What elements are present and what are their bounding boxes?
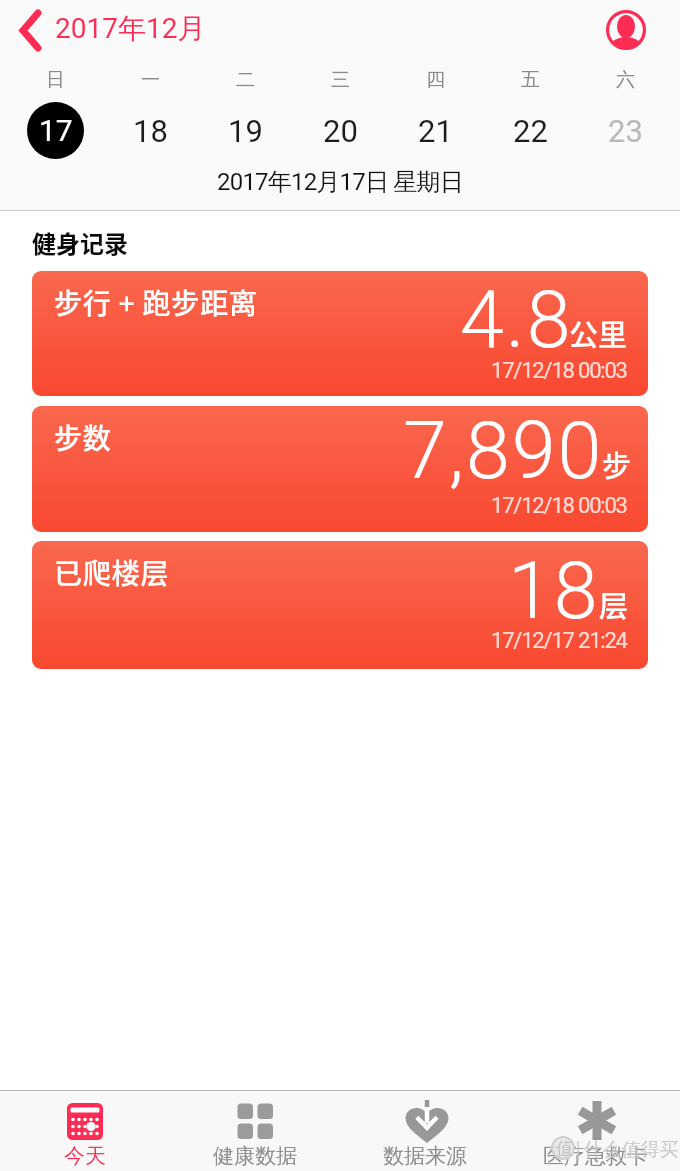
staticText: 五 bbox=[521, 68, 540, 92]
staticText: 已爬楼层 bbox=[54, 552, 170, 593]
staticText: 2017年12月17日 星期日 bbox=[217, 167, 463, 197]
button[interactable] bbox=[14, 10, 54, 50]
staticText: 数据来源 bbox=[383, 1143, 467, 1169]
staticText: 值 bbox=[556, 1138, 573, 1159]
button[interactable]: 19 bbox=[198, 102, 293, 159]
button[interactable]: 步行 + 跑步距离 bbox=[32, 271, 648, 396]
staticText: 步数 bbox=[54, 417, 112, 458]
button[interactable]: 医疗急救卡 bbox=[510, 1090, 680, 1171]
staticText: 今天 bbox=[64, 1143, 106, 1169]
staticText: 17/12/17 21:24 bbox=[491, 628, 627, 654]
staticText: 二 bbox=[236, 68, 255, 92]
button[interactable]: 今天 bbox=[0, 1090, 170, 1171]
button[interactable]: 数据来源 bbox=[340, 1090, 510, 1171]
staticText: 18 bbox=[133, 113, 168, 149]
staticText: 17 bbox=[39, 113, 73, 148]
staticText: 健身记录 bbox=[32, 225, 128, 260]
staticText: 17/12/18 00:03 bbox=[491, 493, 627, 519]
staticText: 步行 + 跑步距离 bbox=[54, 282, 258, 323]
staticText: 健康数据 bbox=[213, 1143, 297, 1169]
staticText: 六 bbox=[616, 68, 635, 92]
staticText: 17/12/18 00:03 bbox=[491, 358, 627, 384]
staticText: 21 bbox=[418, 113, 453, 149]
staticText: 19 bbox=[228, 113, 263, 149]
staticText: 三 bbox=[331, 68, 350, 92]
button[interactable]: 17 bbox=[27, 102, 84, 159]
button[interactable]: 18 bbox=[103, 102, 198, 159]
button[interactable]: 22 bbox=[483, 102, 578, 159]
staticText: 一 bbox=[141, 68, 160, 92]
staticText: 四 bbox=[426, 68, 445, 92]
button[interactable]: 步数 bbox=[32, 406, 648, 532]
button[interactable] bbox=[605, 9, 647, 51]
staticText: 公里 bbox=[569, 312, 628, 354]
staticText: 步 bbox=[602, 443, 632, 485]
button[interactable]: 20 bbox=[293, 102, 388, 159]
button[interactable]: 23 bbox=[578, 102, 673, 159]
staticText: |什么值得买 bbox=[573, 1136, 679, 1162]
button[interactable]: 2017年12月 bbox=[55, 11, 206, 46]
staticText: 4.8 bbox=[460, 274, 573, 367]
button[interactable]: 21 bbox=[388, 102, 483, 159]
staticText: 日 bbox=[46, 68, 65, 92]
staticText: 层 bbox=[599, 583, 629, 625]
button[interactable]: 健康数据 bbox=[170, 1090, 340, 1171]
staticText: 7,890 bbox=[403, 406, 604, 498]
staticText: 23 bbox=[608, 113, 643, 149]
staticText: 医疗急救卡 bbox=[543, 1143, 648, 1169]
staticText: 20 bbox=[323, 113, 358, 149]
staticText: 22 bbox=[513, 113, 548, 149]
staticText: 18 bbox=[508, 545, 600, 638]
button[interactable]: 已爬楼层 bbox=[32, 541, 648, 669]
